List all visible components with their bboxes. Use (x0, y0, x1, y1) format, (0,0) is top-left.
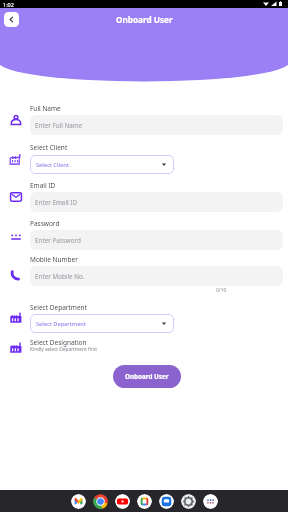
button[interactable]: YouTube (115, 494, 130, 509)
button[interactable]: Enter Password (30, 230, 283, 250)
staticText: Full Name (30, 104, 61, 113)
staticText: Enter Password (35, 236, 81, 245)
button[interactable]: Enter Full Name (30, 115, 283, 135)
staticText: Onboard User (116, 14, 173, 25)
button[interactable]: Enter Email ID (30, 192, 283, 212)
staticText: Kindly select Department first (30, 346, 97, 353)
staticText: Onboard User (125, 372, 169, 381)
button[interactable]: Select Client (30, 155, 174, 174)
staticText: Select Designation (30, 338, 87, 347)
staticText: Password (30, 219, 60, 228)
staticText: Enter Email ID (35, 198, 77, 207)
staticText: Select Client (36, 161, 69, 169)
staticText: Select Client (30, 143, 68, 152)
button[interactable]: Messages (159, 494, 174, 509)
staticText: Enter Full Name (35, 121, 83, 130)
staticText: Select Department (36, 320, 86, 328)
staticText: Select Department (30, 303, 87, 312)
button[interactable]: Chrome (93, 494, 108, 509)
staticText: Email ID (30, 181, 56, 190)
button[interactable]: Gmail (71, 494, 86, 509)
staticText: 0/10 (216, 287, 227, 294)
staticText: Mobile Number (30, 255, 78, 264)
button[interactable]: All apps (203, 494, 218, 509)
staticText: Enter Mobile No. (35, 272, 85, 281)
staticText: 1:02 (3, 1, 14, 8)
button[interactable]: Settings (181, 494, 196, 509)
button[interactable]: Select Department (30, 314, 174, 333)
button[interactable]: Photos (137, 494, 152, 509)
button[interactable]: Back (4, 12, 19, 27)
button[interactable]: Onboard User (113, 365, 181, 388)
button[interactable]: Enter Mobile No. (30, 266, 283, 286)
